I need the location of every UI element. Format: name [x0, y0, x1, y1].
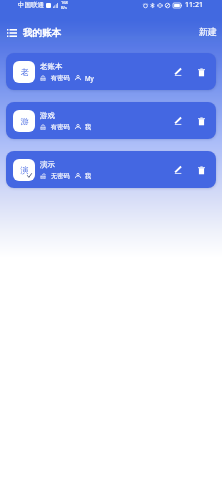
staticText: 168: [61, 0, 68, 5]
staticText: 无密码: [51, 172, 70, 180]
button[interactable]: Edit: [169, 63, 187, 81]
button[interactable]: Menu: [0, 17, 23, 48]
staticText: 有密码: [51, 74, 70, 82]
button[interactable]: 演: [6, 151, 216, 188]
button[interactable]: Delete: [192, 63, 210, 81]
staticText: 新建: [199, 27, 217, 38]
button[interactable]: Delete: [192, 161, 210, 179]
button[interactable]: Edit: [169, 112, 187, 130]
staticText: 有密码: [51, 123, 70, 131]
staticText: 老账本: [40, 62, 63, 71]
staticText: 我: [85, 123, 92, 131]
button[interactable]: Edit: [169, 161, 187, 179]
staticText: My: [85, 74, 94, 82]
button[interactable]: 老: [6, 53, 216, 90]
staticText: 中国联通: [18, 1, 44, 9]
button[interactable]: Delete: [192, 112, 210, 130]
staticText: 游戏: [40, 111, 55, 120]
staticText: 演: [20, 165, 29, 175]
staticText: 游: [20, 116, 29, 126]
button[interactable]: 游: [6, 102, 216, 139]
staticText: 我: [85, 172, 92, 180]
button[interactable]: 新建: [194, 22, 222, 43]
staticText: 演示: [40, 160, 55, 169]
staticText: 老: [20, 67, 29, 77]
staticText: 我的账本: [23, 27, 61, 39]
staticText: B/s: [61, 5, 68, 10]
staticText: 11:21: [185, 0, 203, 10]
